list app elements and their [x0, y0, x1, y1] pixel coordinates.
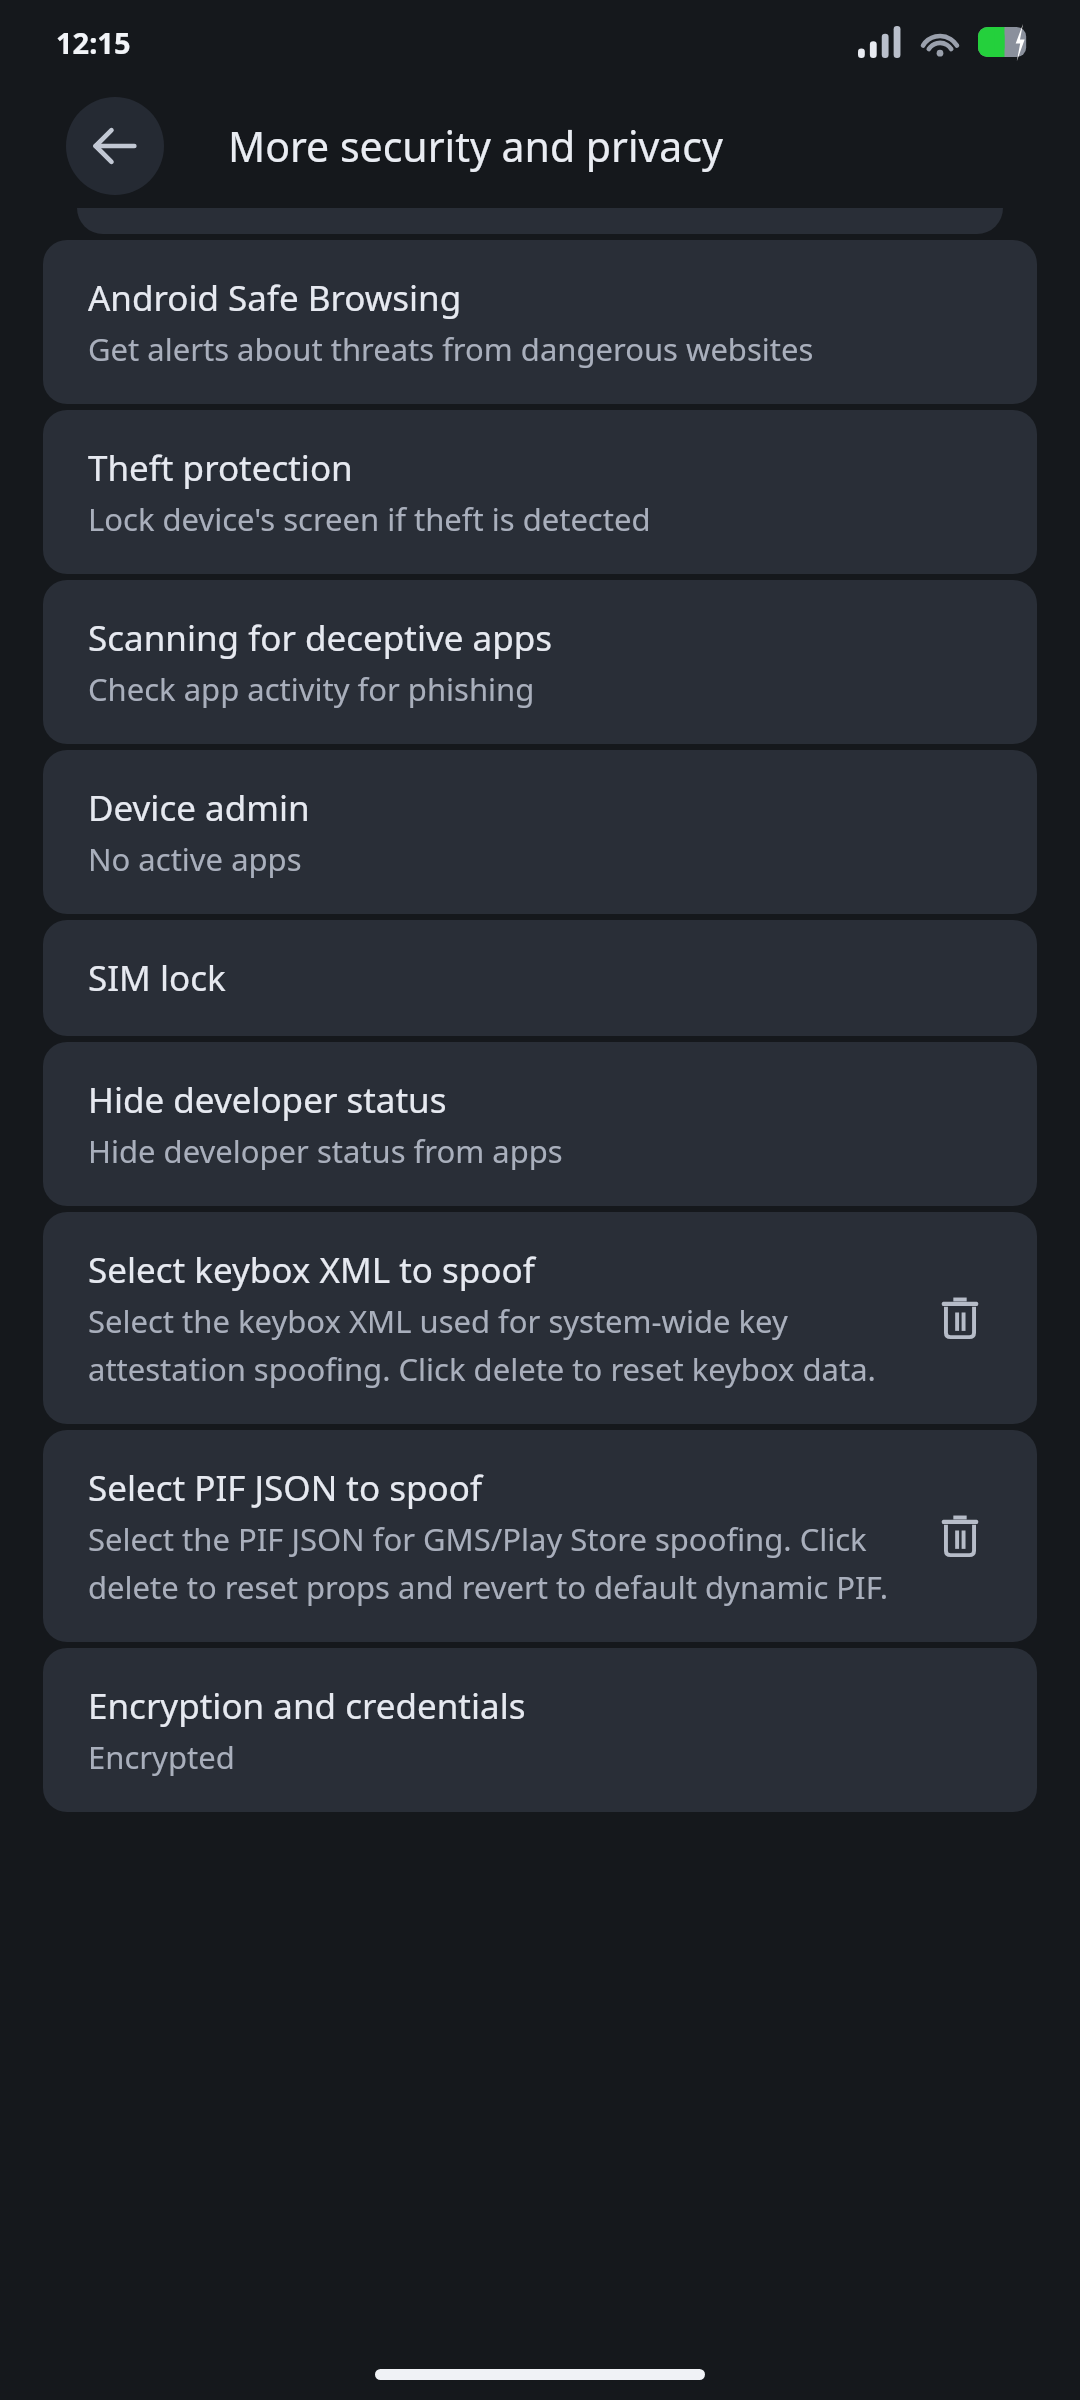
staticText: SIM lock [88, 954, 226, 1002]
staticText: Scanning for deceptive apps [88, 614, 553, 662]
button[interactable]: Device admin [43, 750, 1037, 914]
button[interactable]: Encryption and credentials [43, 1648, 1037, 1812]
staticText: Hide developer status from apps [88, 1130, 563, 1172]
button[interactable]: Android Safe Browsing [43, 240, 1037, 404]
staticText: Select the PIF JSON for GMS/Play Store s… [88, 1518, 917, 1608]
staticText: Theft protection [88, 444, 353, 492]
staticText: Encryption and credentials [88, 1682, 526, 1730]
staticText: Encrypted [88, 1736, 235, 1778]
button[interactable]: Scanning for deceptive apps [43, 580, 1037, 744]
staticText: Select keybox XML to spoof [88, 1246, 535, 1294]
staticText: No active apps [88, 838, 302, 880]
button[interactable]: Back [66, 97, 164, 195]
button[interactable]: Select keybox XML to spoof [43, 1212, 1037, 1424]
staticText: Hide developer status [88, 1076, 447, 1124]
button[interactable]: Delete [917, 1493, 1003, 1579]
staticText: Select PIF JSON to spoof [88, 1464, 482, 1512]
staticText: Check app activity for phishing [88, 668, 535, 710]
staticText: Device admin [88, 784, 310, 832]
staticText: Lock device's screen if theft is detecte… [88, 498, 651, 540]
staticText: More security and privacy [228, 118, 723, 174]
staticText: Android Safe Browsing [88, 274, 462, 322]
button[interactable]: Hide developer status [43, 1042, 1037, 1206]
staticText: 12:15 [56, 23, 131, 62]
staticText: Get alerts about threats from dangerous … [88, 328, 814, 370]
button[interactable]: Theft protection [43, 410, 1037, 574]
button[interactable]: SIM lock [43, 920, 1037, 1036]
button[interactable]: Delete [917, 1275, 1003, 1361]
button[interactable]: Select PIF JSON to spoof [43, 1430, 1037, 1642]
staticText: Select the keybox XML used for system-wi… [88, 1300, 917, 1390]
